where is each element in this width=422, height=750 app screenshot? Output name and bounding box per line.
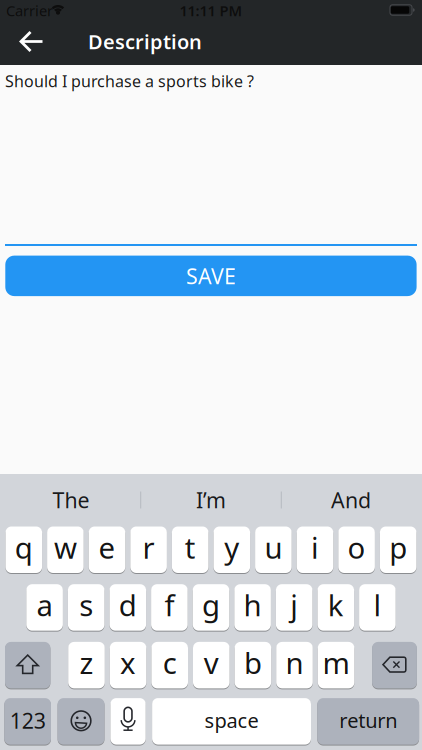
- staticText: return: [339, 707, 397, 734]
- staticText: j: [290, 585, 298, 624]
- button[interactable]: c: [151, 641, 188, 689]
- button[interactable]: Description text field: [0, 65, 422, 246]
- button[interactable]: Numbers: [4, 698, 51, 745]
- staticText: z: [79, 643, 93, 682]
- button[interactable]: m: [318, 641, 354, 689]
- staticText: Should I purchase a sports bike ?: [5, 70, 254, 92]
- button[interactable]: Emoji: [58, 698, 104, 745]
- button[interactable]: y: [213, 526, 250, 573]
- button[interactable]: x: [110, 641, 146, 689]
- button[interactable]: j: [276, 584, 312, 631]
- staticText: SAVE: [186, 262, 236, 290]
- button[interactable]: o: [338, 526, 375, 573]
- staticText: 11:11 PM: [179, 1, 242, 20]
- button[interactable]: And: [281, 474, 421, 526]
- staticText: g: [202, 585, 220, 624]
- staticText: s: [79, 585, 93, 624]
- button[interactable]: f: [151, 584, 188, 631]
- staticText: i: [311, 528, 319, 567]
- button[interactable]: d: [109, 584, 146, 631]
- button[interactable]: q: [5, 526, 42, 573]
- button[interactable]: w: [47, 526, 84, 573]
- staticText: And: [331, 486, 371, 514]
- staticText: n: [285, 643, 303, 682]
- button[interactable]: I’m: [141, 474, 281, 526]
- staticText: 123: [10, 706, 46, 734]
- button[interactable]: l: [359, 584, 396, 631]
- button[interactable]: SAVE: [5, 256, 417, 296]
- staticText: e: [98, 528, 115, 567]
- staticText: o: [348, 528, 366, 567]
- button[interactable]: p: [380, 526, 416, 573]
- staticText: h: [244, 585, 262, 624]
- staticText: a: [37, 585, 53, 624]
- staticText: p: [389, 528, 407, 567]
- button[interactable]: Delete: [372, 641, 417, 689]
- staticText: Carrier: [6, 1, 53, 20]
- button[interactable]: s: [68, 584, 104, 631]
- staticText: u: [264, 528, 282, 567]
- button[interactable]: e: [89, 526, 125, 573]
- staticText: m: [323, 643, 350, 682]
- button[interactable]: u: [255, 526, 292, 573]
- staticText: r: [143, 528, 155, 567]
- button[interactable]: h: [234, 584, 271, 631]
- staticText: x: [120, 643, 136, 682]
- button[interactable]: i: [297, 526, 333, 573]
- button[interactable]: return: [317, 698, 419, 745]
- staticText: space: [204, 707, 258, 734]
- staticText: y: [224, 528, 239, 567]
- staticText: l: [373, 585, 381, 624]
- staticText: The: [52, 486, 89, 514]
- button[interactable]: v: [193, 641, 230, 689]
- staticText: v: [204, 643, 219, 682]
- staticText: w: [54, 528, 77, 567]
- staticText: c: [163, 643, 177, 682]
- staticText: t: [185, 528, 196, 567]
- button[interactable]: z: [68, 641, 105, 689]
- button[interactable]: r: [130, 526, 167, 573]
- staticText: b: [244, 643, 262, 682]
- button[interactable]: b: [235, 641, 271, 689]
- staticText: Description: [88, 28, 202, 55]
- button[interactable]: space: [152, 698, 311, 745]
- button[interactable]: Shift: [5, 641, 50, 689]
- staticText: q: [15, 528, 33, 567]
- staticText: k: [328, 585, 344, 624]
- staticText: I’m: [196, 486, 226, 514]
- button[interactable]: n: [276, 641, 313, 689]
- staticText: d: [119, 585, 137, 624]
- button[interactable]: Dictation: [110, 698, 146, 745]
- button[interactable]: a: [26, 584, 63, 631]
- button[interactable]: t: [172, 526, 208, 573]
- button[interactable]: Back: [0, 0, 56, 65]
- staticText: f: [164, 585, 174, 624]
- button[interactable]: k: [317, 584, 354, 631]
- button[interactable]: The: [1, 474, 141, 526]
- button[interactable]: g: [193, 584, 229, 631]
